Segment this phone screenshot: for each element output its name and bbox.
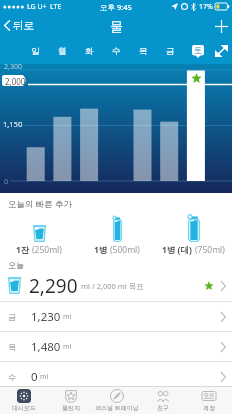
button[interactable]: 추가	[210, 15, 232, 37]
button[interactable]: 목	[0, 332, 232, 361]
staticText: 0	[4, 176, 9, 186]
staticText: (250ml)	[32, 244, 62, 256]
staticText: 수	[8, 372, 16, 382]
button[interactable]: 일	[22, 38, 49, 64]
staticText: (750ml)	[195, 244, 225, 256]
staticText: 챌린지	[62, 404, 80, 412]
button[interactable]: 금	[157, 38, 184, 64]
button[interactable]: 화	[76, 38, 103, 64]
button[interactable]: 대시보드	[0, 387, 47, 414]
staticText: 1병	[94, 244, 110, 256]
staticText: 오늘의 빠른 추가	[8, 198, 72, 210]
staticText: 1잔	[16, 244, 32, 256]
staticText: 목	[139, 46, 148, 57]
staticText: 친구	[157, 404, 169, 412]
button[interactable]: 뒤로	[0, 16, 38, 35]
staticText: 목	[8, 342, 16, 352]
staticText: 오후 9:45	[100, 2, 132, 12]
button[interactable]: 목	[130, 38, 157, 64]
staticText: 1,480	[31, 339, 61, 355]
staticText: ml / 2,000 ml 목표	[81, 281, 144, 291]
staticText: LTE	[50, 2, 62, 12]
staticText: 화	[85, 46, 94, 57]
button[interactable]: 수	[103, 38, 130, 64]
staticText: ml	[63, 342, 72, 352]
staticText: 물	[110, 18, 123, 34]
staticText: (500ml)	[110, 244, 140, 256]
button[interactable]: 친구	[140, 387, 186, 414]
staticText: 월	[58, 46, 67, 57]
staticText: 금	[8, 312, 16, 322]
button[interactable]: 1잔	[12, 214, 66, 256]
staticText: 오늘	[8, 260, 24, 270]
staticText: ml	[63, 312, 72, 322]
button[interactable]: 수	[0, 362, 232, 391]
staticText: LG U+	[27, 2, 47, 12]
staticText: 뒤로	[13, 19, 34, 32]
staticText: 17%	[199, 2, 213, 12]
staticText: 수	[112, 46, 121, 57]
button[interactable]: 1병	[90, 214, 144, 256]
staticText: 1병 (대)	[162, 244, 195, 256]
button[interactable]: 퍼스널 트레이닝	[94, 387, 140, 414]
button[interactable]: 전체화면	[211, 38, 232, 64]
staticText: 2,300	[4, 62, 22, 72]
button[interactable]: 금	[0, 302, 232, 331]
button[interactable]: 계정	[186, 387, 232, 414]
button[interactable]: 월	[49, 38, 76, 64]
button[interactable]: 2,290	[0, 270, 232, 301]
staticText: 대시보드	[12, 404, 36, 412]
staticText: 2,000	[5, 76, 26, 87]
staticText: 일	[31, 46, 40, 57]
staticText: 1,230	[31, 309, 61, 325]
button[interactable]: 1병 (대)	[158, 214, 229, 256]
staticText: 금	[166, 46, 175, 57]
staticText: 0	[31, 369, 38, 385]
staticText: 퍼스널 트레이닝	[95, 404, 139, 412]
staticText: 2,290	[29, 273, 78, 299]
button[interactable]: 토	[184, 38, 211, 64]
staticText: 1,150	[3, 119, 23, 129]
staticText: 계정	[203, 404, 215, 412]
button[interactable]: 챌린지	[47, 387, 94, 414]
staticText: 토	[194, 45, 202, 55]
staticText: ml	[40, 372, 49, 382]
